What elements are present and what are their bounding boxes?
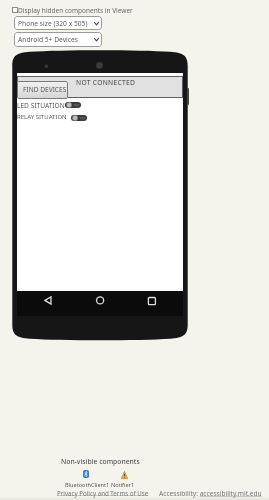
button[interactable]: Privacy Policy and Terms of Use <box>57 489 149 497</box>
button[interactable] <box>121 471 128 479</box>
staticText: FIND DEVICES <box>23 85 67 94</box>
staticText: BluetoothClient1 <box>65 481 110 489</box>
button[interactable] <box>12 7 18 13</box>
button[interactable] <box>83 470 89 478</box>
button[interactable] <box>65 102 81 108</box>
staticText: RELAY SITUATION <box>17 113 67 121</box>
staticText: Display hidden components in Viewer <box>18 6 133 15</box>
staticText: Non-visible components <box>61 457 140 466</box>
staticText: Phone size (320 x 505) <box>18 19 88 28</box>
staticText: NOT CONNECTED <box>76 78 136 87</box>
button[interactable]: Android 5+ Devices <box>14 32 102 47</box>
staticText: LED SITUATION <box>17 101 65 110</box>
staticText: Android 5+ Devices <box>18 35 78 44</box>
button[interactable]: Accessibility: accessibility.mit.edu <box>159 489 262 498</box>
button[interactable]: FIND DEVICES <box>17 81 68 99</box>
button[interactable] <box>71 115 87 121</box>
staticText: Notifier1 <box>111 481 135 489</box>
button[interactable]: Phone size (320 x 505) <box>14 16 102 30</box>
